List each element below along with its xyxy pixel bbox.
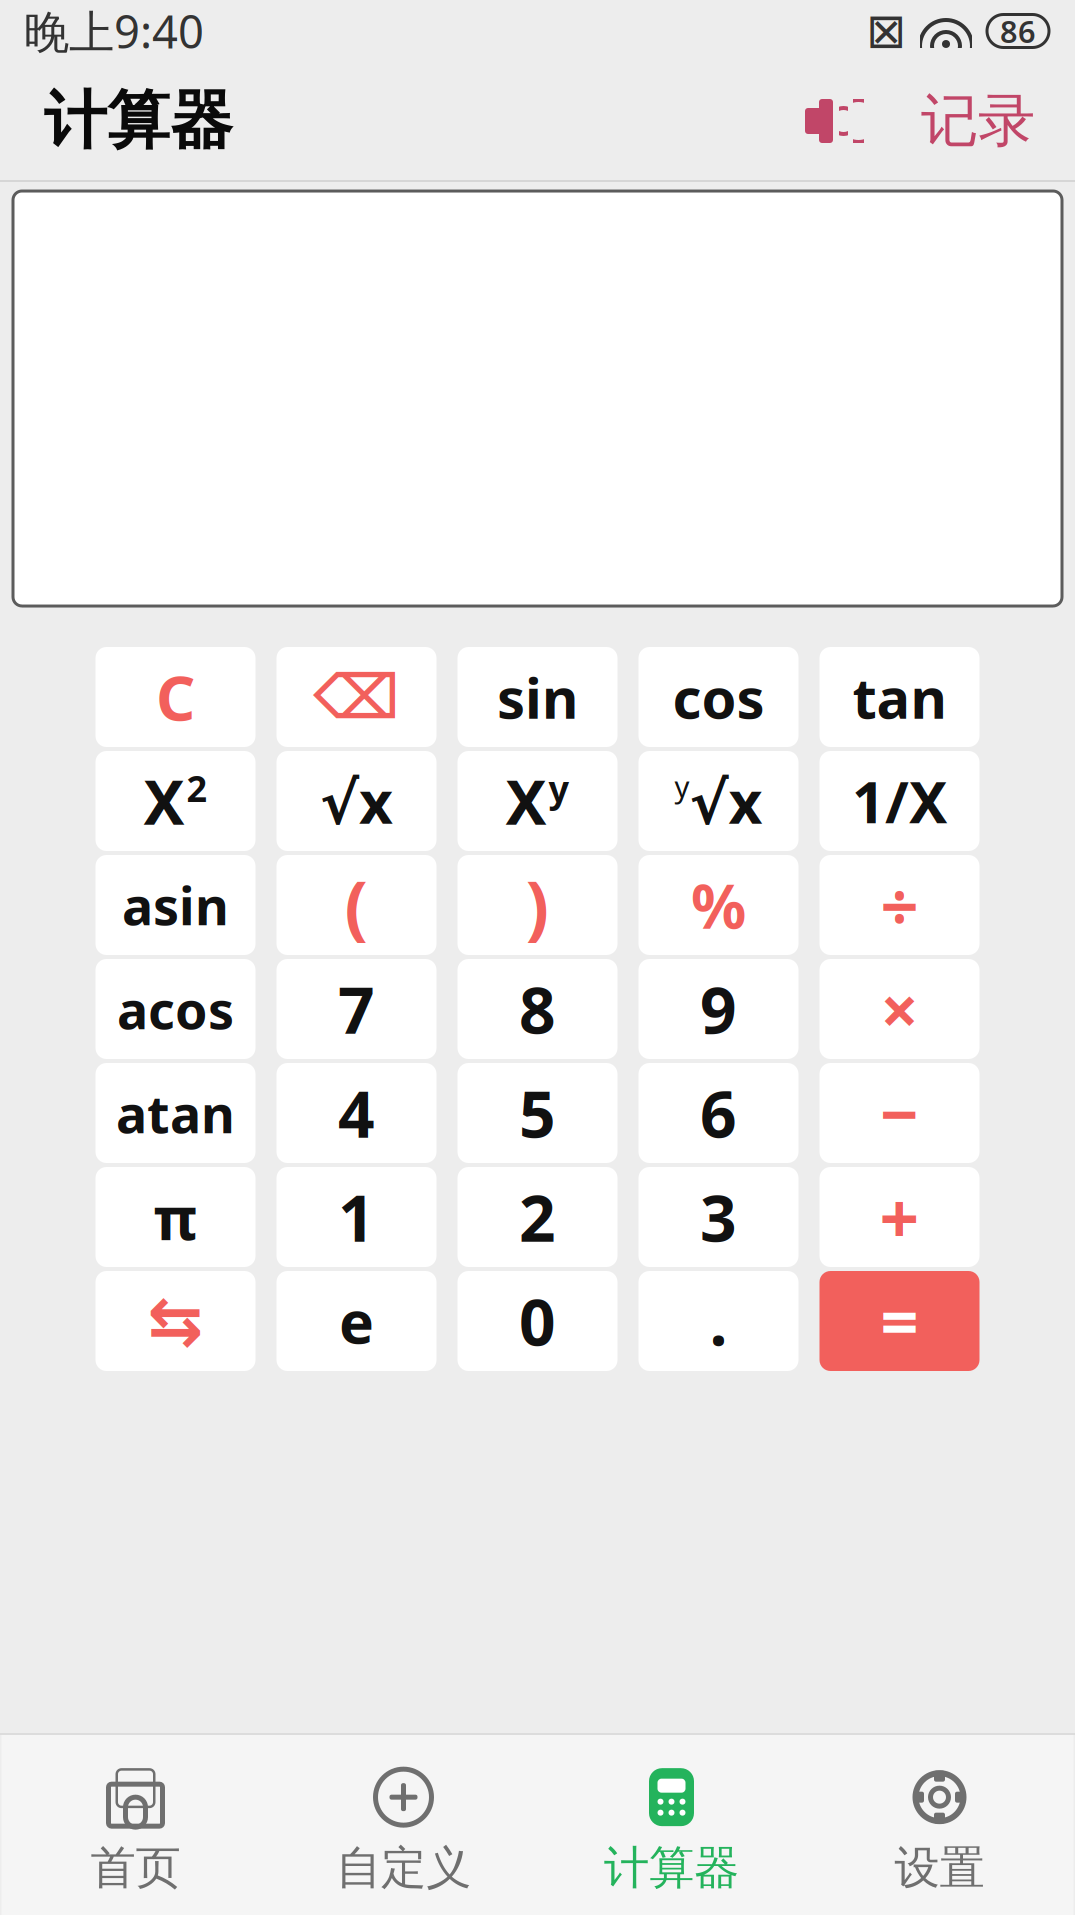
staticText: 2 [519, 1174, 556, 1259]
button[interactable]: X squared [95, 751, 255, 851]
staticText: 晚上9:40 [24, 1, 204, 61]
staticText: sin [497, 660, 578, 734]
staticText: + [879, 1171, 919, 1263]
staticText: ⌫ [313, 662, 400, 732]
button[interactable]: 4 [276, 1063, 436, 1163]
button[interactable]: tan [819, 647, 979, 747]
staticText: cos [672, 660, 764, 734]
staticText: ⇆ [147, 1283, 203, 1359]
button[interactable]: 7 [276, 959, 436, 1059]
button[interactable]: 8 [457, 959, 617, 1059]
staticText: 首页 [90, 1840, 180, 1896]
button[interactable]: ( [276, 855, 436, 955]
button[interactable]: Clear [95, 647, 255, 747]
staticText: acos [117, 974, 234, 1044]
staticText: 3 [700, 1174, 737, 1259]
button[interactable]: acos [95, 959, 255, 1059]
staticText: 5 [519, 1070, 556, 1155]
staticText: 0 [519, 1278, 556, 1363]
staticText: 9 [700, 966, 737, 1051]
staticText: y [674, 766, 689, 805]
button[interactable]: ) [457, 855, 617, 955]
button[interactable]: Backspace [276, 647, 436, 747]
staticText: 2 [186, 764, 207, 812]
button[interactable]: sin [457, 647, 617, 747]
staticText: X [505, 760, 546, 842]
button[interactable]: Swap [95, 1271, 255, 1371]
button[interactable]: 6 [638, 1063, 798, 1163]
button[interactable]: Square root of x [276, 751, 436, 851]
staticText: 1/X [852, 763, 947, 839]
staticText: π [153, 1178, 197, 1256]
staticText: ) [525, 859, 549, 951]
staticText: 4 [338, 1070, 375, 1155]
staticText: atan [116, 1078, 235, 1148]
staticText: . [709, 1278, 727, 1363]
button[interactable]: Multiply [819, 959, 979, 1059]
button[interactable]: Minus [819, 1063, 979, 1163]
button[interactable]: e [276, 1271, 436, 1371]
button[interactable]: 2 [457, 1167, 617, 1267]
staticText: asin [122, 870, 229, 940]
staticText: 6 [700, 1070, 737, 1155]
staticText: √x [689, 762, 762, 840]
staticText: ⊠ [866, 4, 906, 58]
button[interactable]: 自定义 [269, 1756, 537, 1908]
staticText: % [691, 864, 746, 946]
button[interactable]: π [95, 1167, 255, 1267]
button[interactable]: Equals [819, 1271, 979, 1371]
button[interactable]: 3 [638, 1167, 798, 1267]
staticText: × [880, 965, 918, 1053]
button[interactable]: atan [95, 1063, 255, 1163]
button[interactable]: 首页 [1, 1756, 269, 1908]
staticText: e [339, 1282, 374, 1360]
button[interactable]: 计算器 [537, 1756, 805, 1908]
button[interactable]: Decimal point [638, 1271, 798, 1371]
button[interactable]: Plus [819, 1167, 979, 1267]
button[interactable]: Divide [819, 855, 979, 955]
button[interactable]: Sound [787, 83, 879, 159]
staticText: 86 [1000, 11, 1036, 51]
staticText: 计算器 [604, 1840, 739, 1896]
staticText: ( [344, 859, 368, 951]
button[interactable]: 记录 [911, 74, 1045, 168]
button[interactable]: 1 [276, 1167, 436, 1267]
button[interactable]: 设置 [805, 1756, 1073, 1908]
button[interactable]: 9 [638, 959, 798, 1059]
staticText: C [156, 656, 195, 738]
button[interactable]: X to the power of y [457, 751, 617, 851]
button[interactable]: % [638, 855, 798, 955]
staticText: 记录 [921, 86, 1035, 156]
button[interactable]: cos [638, 647, 798, 747]
staticText: 计算器 [44, 82, 233, 159]
staticText: ÷ [880, 861, 918, 949]
staticText: tan [852, 660, 946, 734]
button[interactable]: y-th root of x [638, 751, 798, 851]
staticText: 自定义 [336, 1840, 471, 1896]
staticText: 1 [338, 1174, 375, 1259]
button[interactable]: asin [95, 855, 255, 955]
staticText: − [880, 1069, 919, 1157]
staticText: √x [320, 762, 393, 840]
staticText: 设置 [894, 1840, 984, 1896]
staticText: = [880, 1277, 918, 1365]
staticText: y [548, 764, 569, 812]
button[interactable]: 0 [457, 1271, 617, 1371]
button[interactable]: 1/X [819, 751, 979, 851]
staticText: 7 [338, 966, 375, 1051]
button[interactable]: 5 [457, 1063, 617, 1163]
staticText: X [143, 760, 184, 842]
staticText: 8 [519, 966, 556, 1051]
